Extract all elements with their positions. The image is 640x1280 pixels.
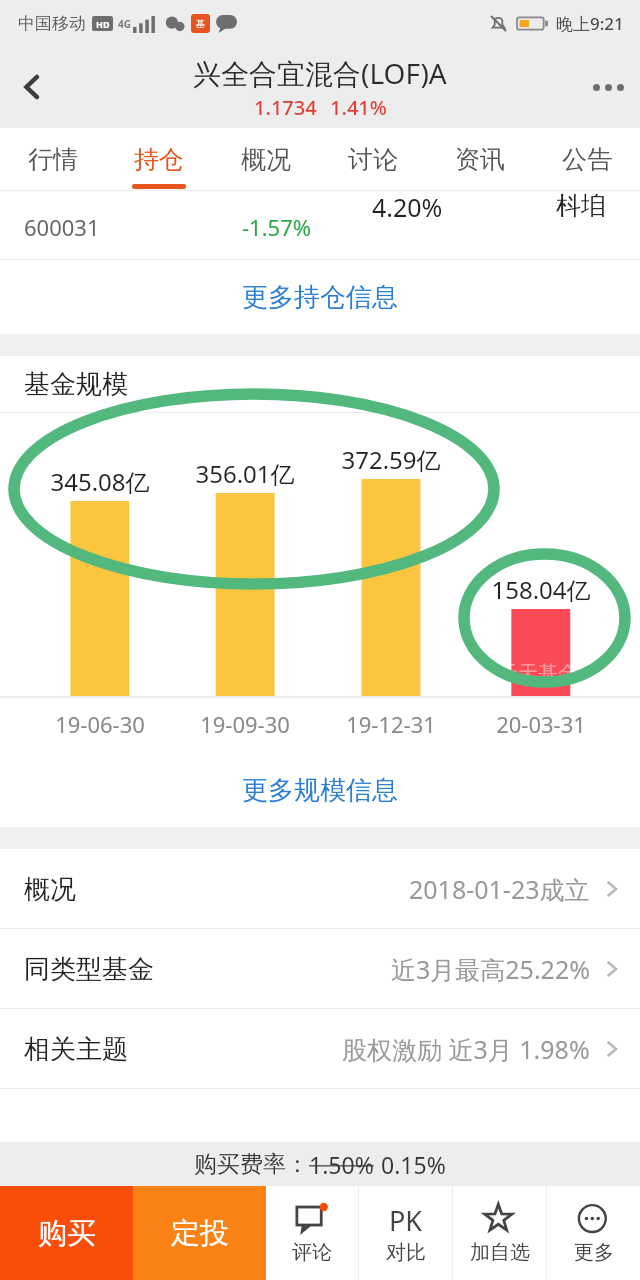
staticText: 19-06-30 — [40, 709, 160, 739]
staticText: 枓垍 — [556, 190, 606, 221]
staticText: 评论 — [292, 1240, 332, 1265]
staticText: 概况 — [241, 144, 291, 175]
staticText: 持仓 — [134, 144, 184, 175]
staticText: 公告 — [562, 144, 612, 175]
staticText: 天天基金 — [498, 661, 578, 686]
button[interactable]: 更多规模信息 — [0, 753, 640, 827]
staticText: 基 — [196, 18, 205, 29]
staticText: 更多 — [574, 1240, 614, 1265]
staticText: 1.41% — [330, 94, 387, 121]
staticText: 对比 — [386, 1240, 426, 1265]
staticText: 1.50% — [309, 1149, 374, 1180]
staticText: 同类型基金 — [24, 953, 154, 986]
staticText: 兴全合宜混合(LOF)A — [193, 54, 447, 92]
staticText: 概况 — [24, 873, 76, 906]
button[interactable]: 资讯 — [426, 128, 533, 190]
button[interactable]: 返回 — [0, 55, 64, 119]
staticText: 158.04亿 — [481, 573, 601, 606]
staticText: PK — [389, 1202, 423, 1238]
staticText: HD — [96, 18, 110, 30]
button[interactable]: 相关主题 — [0, 1009, 640, 1089]
staticText: 更多规模信息 — [242, 774, 398, 807]
staticText: 356.01亿 — [185, 457, 305, 490]
button[interactable]: 讨论 — [319, 128, 426, 190]
staticText: 1.1734 — [254, 94, 317, 121]
staticText: 购买 — [38, 1215, 96, 1252]
staticText: 19-12-31 — [331, 709, 451, 739]
staticText: 2018-01-23成立 — [409, 872, 590, 906]
button[interactable]: 评论 — [266, 1186, 358, 1280]
staticText: 372.59亿 — [331, 443, 451, 476]
button[interactable]: 行情 — [0, 128, 106, 190]
staticText: 更多持仓信息 — [242, 281, 398, 314]
button[interactable]: 加自选 — [453, 1186, 546, 1280]
button[interactable]: 同类型基金 — [0, 929, 640, 1009]
staticText: 相关主题 — [24, 1033, 128, 1066]
staticText: -1.57% — [242, 212, 312, 242]
button[interactable]: 更多选项 — [576, 55, 640, 119]
staticText: 4G — [118, 17, 131, 31]
staticText: 近3月最高25.22% — [391, 952, 590, 986]
staticText: 中国移动 — [18, 13, 86, 34]
button[interactable]: PK — [359, 1186, 452, 1280]
button[interactable]: 购买 — [0, 1186, 133, 1280]
staticText: 资讯 — [455, 144, 505, 175]
staticText: 行情 — [28, 144, 78, 175]
staticText: 0.15% — [381, 1149, 446, 1180]
staticText: 晚上9:21 — [556, 12, 624, 35]
staticText: 4.20% — [372, 190, 443, 224]
button[interactable]: 定投 — [133, 1186, 266, 1280]
staticText: 345.08亿 — [40, 465, 160, 498]
button[interactable]: 概况 — [212, 128, 319, 190]
staticText: 股权激励 近3月 1.98% — [342, 1032, 590, 1066]
staticText: 19-09-30 — [185, 709, 305, 739]
staticText: 购买费率： — [194, 1150, 309, 1179]
button[interactable]: 更多 — [547, 1186, 640, 1280]
button[interactable]: 概况 — [0, 849, 640, 929]
staticText: 定投 — [171, 1215, 229, 1252]
button[interactable]: 持仓 — [106, 128, 212, 190]
button[interactable]: 更多持仓信息 — [0, 260, 640, 334]
staticText: 加自选 — [470, 1240, 530, 1265]
staticText: 讨论 — [348, 144, 398, 175]
staticText: 600031 — [24, 212, 100, 242]
button[interactable]: 公告 — [533, 128, 640, 190]
staticText: 基金规模 — [24, 368, 128, 401]
staticText: 20-03-31 — [481, 709, 601, 739]
